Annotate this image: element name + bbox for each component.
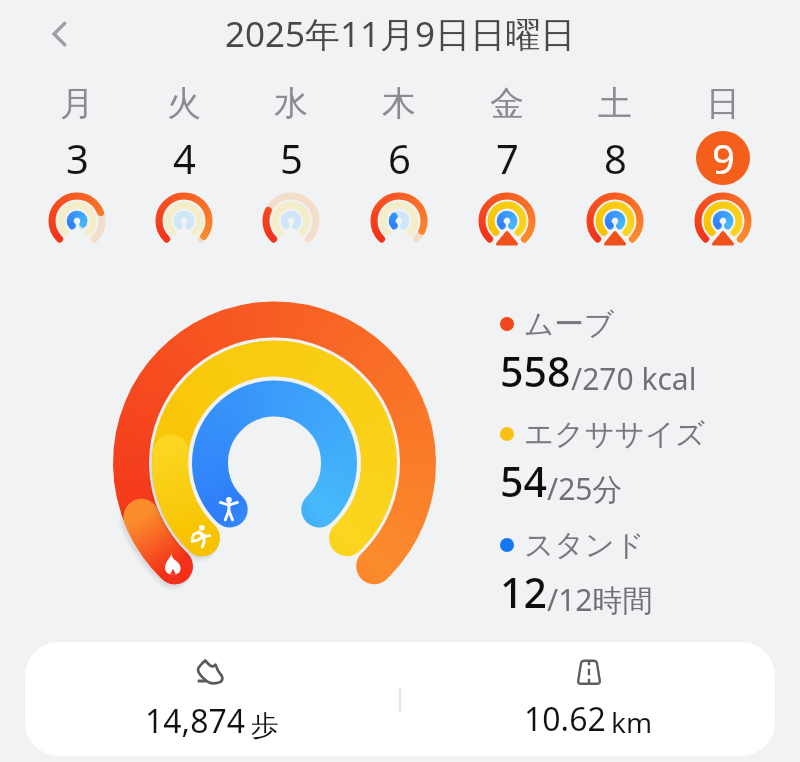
staticText: km	[611, 703, 653, 741]
staticText: 14,874	[145, 699, 246, 743]
staticText: 金	[490, 82, 524, 122]
staticText: 土	[598, 82, 632, 122]
staticText: 4	[173, 131, 196, 185]
staticText: エクササイズ	[524, 416, 706, 453]
staticText: スタンド	[524, 527, 645, 564]
button[interactable]: Back	[36, 10, 84, 58]
staticText: 5	[280, 131, 303, 185]
button[interactable]: 水	[237, 82, 345, 251]
staticText: 歩	[251, 708, 279, 743]
button[interactable]: スタンド	[500, 526, 653, 620]
staticText: 6	[388, 131, 411, 185]
button[interactable]: 火	[130, 82, 237, 251]
button[interactable]: 土	[561, 82, 669, 251]
staticText: 12	[500, 564, 547, 620]
staticText: 木	[382, 82, 416, 122]
staticText: 8	[604, 131, 627, 185]
button[interactable]: エクササイズ	[500, 415, 706, 509]
staticText: 3	[66, 131, 89, 185]
staticText: /270 kcal	[571, 358, 697, 399]
staticText: 54	[500, 453, 547, 509]
staticText: 日	[706, 82, 740, 122]
staticText: 火	[167, 82, 201, 122]
staticText: 558	[500, 343, 571, 399]
staticText: /25分	[547, 468, 623, 509]
staticText: 7	[496, 131, 519, 185]
button[interactable]: ムーブ	[500, 305, 697, 399]
button[interactable]: 金	[453, 82, 561, 251]
staticText: 9	[712, 131, 735, 185]
staticText: 2025年11月9日日曜日	[225, 10, 576, 58]
button[interactable]: 14,874	[25, 642, 775, 756]
staticText: /12時間	[547, 579, 653, 620]
button[interactable]: 木	[345, 82, 453, 251]
button[interactable]: 月	[23, 82, 130, 251]
staticText: ムーブ	[524, 306, 614, 343]
button[interactable]: 日	[669, 82, 777, 251]
staticText: 月	[60, 82, 94, 122]
staticText: 10.62	[524, 697, 606, 741]
staticText: 水	[274, 82, 308, 122]
